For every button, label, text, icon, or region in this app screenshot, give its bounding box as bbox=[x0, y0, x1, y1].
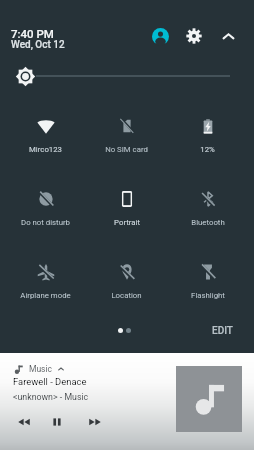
staticText: <unknown> - Music bbox=[13, 392, 89, 402]
staticText: EDIT bbox=[212, 325, 233, 337]
staticText: No SIM card bbox=[105, 145, 148, 154]
button[interactable]: Next track bbox=[84, 411, 106, 433]
button[interactable]: Collapse bbox=[216, 24, 240, 48]
staticText: Bluetooth bbox=[191, 218, 225, 227]
staticText: Do not disturb bbox=[21, 218, 70, 227]
button[interactable]: Flashlight bbox=[167, 250, 248, 310]
staticText: Portrait bbox=[114, 218, 140, 227]
button[interactable]: 12% bbox=[167, 104, 248, 164]
staticText: 12% bbox=[200, 145, 215, 154]
staticText: 7:40 PM bbox=[11, 27, 54, 40]
button[interactable]: Airplane mode bbox=[5, 250, 86, 310]
button[interactable]: Previous track bbox=[13, 411, 35, 433]
button[interactable]: Location bbox=[86, 250, 167, 310]
button[interactable]: User account bbox=[148, 24, 172, 48]
button[interactable]: Bluetooth bbox=[167, 177, 248, 237]
button[interactable]: Settings bbox=[182, 24, 206, 48]
staticText: Airplane mode bbox=[20, 291, 71, 300]
button[interactable]: No SIM card bbox=[86, 104, 167, 164]
staticText: Wed, Oct 12 bbox=[11, 39, 65, 51]
button[interactable]: EDIT bbox=[204, 320, 241, 342]
button[interactable]: Pause bbox=[46, 411, 68, 433]
staticText: Music bbox=[29, 364, 53, 374]
button[interactable]: Do not disturb bbox=[5, 177, 86, 237]
staticText: Location bbox=[111, 291, 142, 300]
button[interactable]: Portrait bbox=[86, 177, 167, 237]
staticText: Flashlight bbox=[191, 291, 225, 300]
staticText: Mirco123 bbox=[29, 145, 62, 154]
button[interactable]: Mirco123 bbox=[5, 104, 86, 164]
staticText: Farewell - Denace bbox=[13, 376, 87, 387]
